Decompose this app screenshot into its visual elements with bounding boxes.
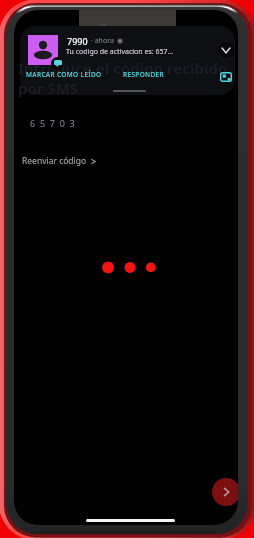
staticText: por SMS xyxy=(18,78,79,98)
staticText: Tu codigo de activacion es: 657… xyxy=(66,47,174,57)
staticText: Introduce el código recibido xyxy=(18,58,228,78)
staticText: Reenviar código xyxy=(22,155,87,167)
button[interactable]: MARCAR COMO LEÍDO xyxy=(23,67,105,82)
staticText: 6 5 7 0 3 xyxy=(30,117,76,129)
button[interactable]: Expandir notificación xyxy=(218,42,234,58)
staticText: · ahora xyxy=(91,36,114,46)
button[interactable]: Continuar xyxy=(212,478,238,506)
button[interactable]: Reenviar código xyxy=(19,152,99,170)
button[interactable]: Picture in picture xyxy=(218,69,233,84)
staticText: 7990 xyxy=(67,35,88,47)
button[interactable]: RESPONDER xyxy=(120,67,168,82)
staticText: RESPONDER xyxy=(123,70,165,79)
staticText: MARCAR COMO LEÍDO xyxy=(26,70,102,79)
